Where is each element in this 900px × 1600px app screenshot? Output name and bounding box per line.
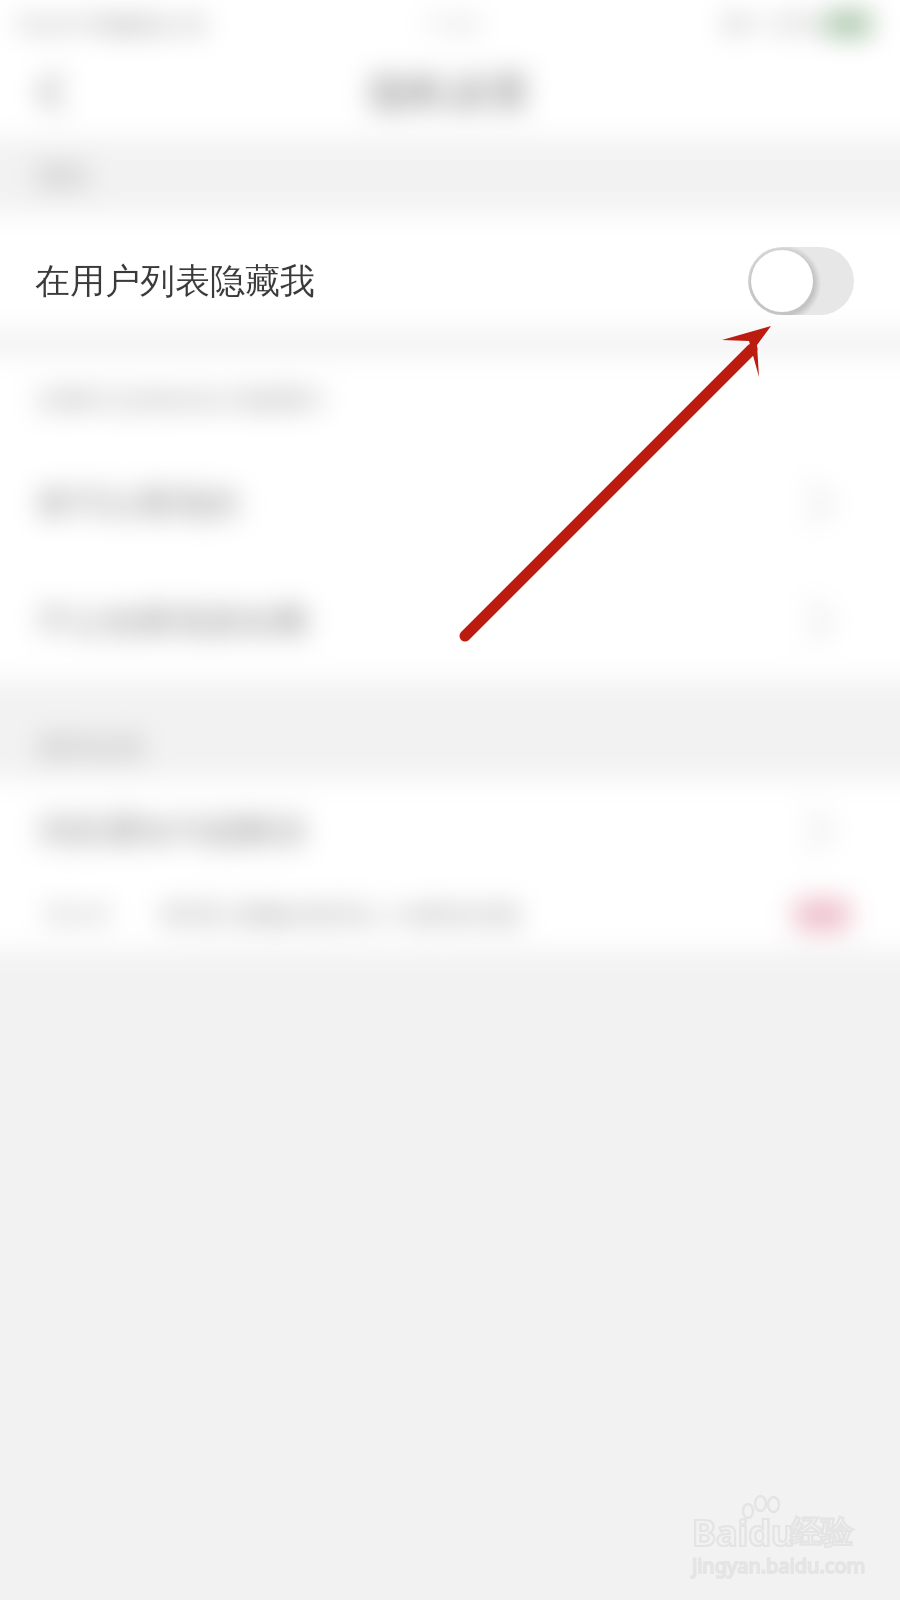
staticText: Baidu xyxy=(692,1508,795,1557)
staticText: 隐私 xyxy=(37,159,91,193)
button[interactable]: 黑名单 xyxy=(0,880,900,950)
button[interactable]: Hide me in user list toggle xyxy=(748,247,854,315)
button[interactable]: 谁可以看我的 xyxy=(0,444,900,562)
staticText: 谁可以看我的 xyxy=(36,482,240,525)
staticText: 经验 xyxy=(790,1513,852,1552)
staticText: 不让他看我朋友圈 xyxy=(36,600,308,643)
staticText: 99+ 67% xyxy=(721,8,818,39)
button[interactable]: 在用户列表隐藏我 xyxy=(0,222,900,340)
staticText: 隐私设置 xyxy=(370,67,530,117)
staticText: 仅聊天过的好友才能看到 xyxy=(36,384,322,417)
staticText: jingyan.baidu.com xyxy=(692,1552,866,1579)
staticText: 消息通知与提醒设 xyxy=(36,809,308,852)
staticText: 在用户列表隐藏我 xyxy=(35,259,315,303)
staticText: 管理已屏蔽的联系人与群组消息 xyxy=(159,899,523,932)
button[interactable]: Back xyxy=(22,64,78,120)
staticText: 10:24 中国移动 4G xyxy=(14,8,207,39)
button[interactable]: 不让他看我朋友圈 xyxy=(0,562,900,680)
button[interactable]: 消息通知与提醒设 xyxy=(0,780,900,880)
